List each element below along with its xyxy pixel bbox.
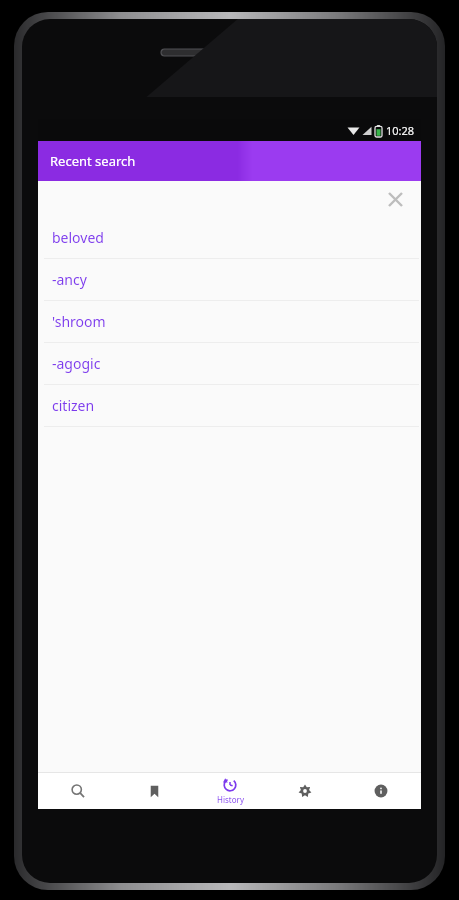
button[interactable]: Settings	[269, 773, 341, 809]
staticText: citizen	[52, 396, 95, 415]
staticText: -ancy	[52, 270, 87, 289]
button[interactable]: citizen	[38, 385, 421, 426]
staticText: 10:28	[386, 123, 415, 138]
staticText: Recent search	[50, 152, 136, 170]
button[interactable]: beloved	[38, 217, 421, 258]
button[interactable]: -ancy	[38, 259, 421, 300]
button[interactable]: Clear history	[383, 187, 407, 211]
staticText: 'shroom	[52, 312, 106, 331]
button[interactable]: Search	[42, 773, 114, 809]
button[interactable]: Info	[345, 773, 417, 809]
button[interactable]: History	[194, 773, 266, 809]
button[interactable]: -agogic	[38, 343, 421, 384]
button[interactable]: Bookmarks	[118, 773, 190, 809]
button[interactable]: 'shroom	[38, 301, 421, 342]
staticText: History	[217, 794, 244, 805]
staticText: beloved	[52, 228, 104, 247]
staticText: -agogic	[52, 354, 101, 373]
